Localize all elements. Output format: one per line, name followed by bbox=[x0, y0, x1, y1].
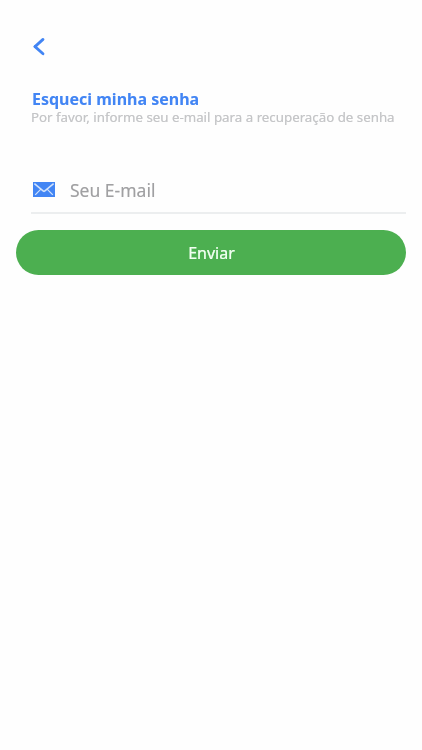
button[interactable]: Enviar bbox=[16, 230, 406, 275]
button[interactable]: Seu E-mail bbox=[16, 170, 406, 212]
staticText: Seu E-mail bbox=[70, 178, 156, 202]
staticText: Enviar bbox=[188, 242, 235, 264]
button[interactable]: Back bbox=[21, 30, 57, 66]
staticText: Por favor, informe seu e-mail para a rec… bbox=[31, 108, 395, 126]
staticText: Esqueci minha senha bbox=[32, 88, 200, 110]
